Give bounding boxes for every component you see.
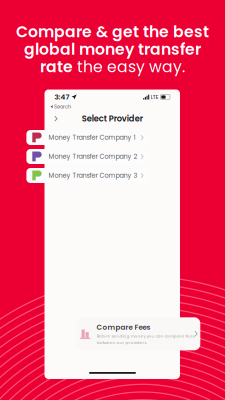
staticText: Money Transfer Company 1 bbox=[48, 133, 135, 142]
staticText: between our providers bbox=[96, 340, 146, 345]
staticText: Search bbox=[54, 103, 71, 110]
staticText: rate the easy way. bbox=[40, 56, 185, 77]
staticText: Compare & get the best bbox=[16, 21, 209, 43]
button[interactable]: Back bbox=[50, 112, 61, 125]
button[interactable]: Compare Fees bbox=[76, 317, 200, 350]
staticText: Money Transfer Company 3 bbox=[48, 171, 137, 180]
staticText: 3:47 bbox=[54, 92, 69, 102]
staticText: global money transfer bbox=[24, 38, 201, 60]
staticText: LTE bbox=[151, 93, 159, 101]
button[interactable]: Money Transfer Company 2 bbox=[26, 149, 149, 164]
staticText: Money Transfer Company 2 bbox=[48, 152, 137, 161]
button[interactable]: Money Transfer Company 3 bbox=[26, 168, 149, 183]
staticText: Select Provider bbox=[82, 113, 143, 124]
staticText: Compare Fees bbox=[96, 322, 150, 332]
button[interactable]: Money Transfer Company 1 bbox=[26, 130, 149, 145]
staticText: Before sending money you can compare fee… bbox=[96, 333, 194, 339]
